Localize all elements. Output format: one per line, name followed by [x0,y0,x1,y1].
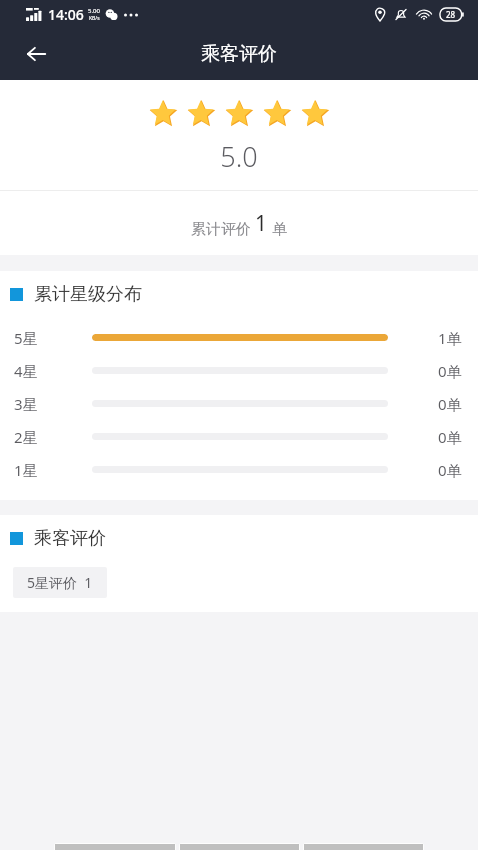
staticText: 乘客评价 [201,42,277,66]
button[interactable]: 1星 [0,453,478,486]
staticText: 乘客评价 [34,527,106,550]
staticText: 1 [255,209,268,238]
staticText: 0单 [438,361,462,381]
button[interactable]: 3星 [0,387,478,420]
staticText: 28 [446,9,456,20]
button[interactable]: Back [14,32,58,76]
staticText: 5.0 [0,138,478,175]
staticText: 3星 [14,394,60,414]
staticText: 5.00 [88,7,100,15]
button[interactable]: 4星 [0,354,478,387]
staticText: 1单 [438,328,462,348]
staticText: KB/s [89,15,100,22]
button[interactable]: 2星 [0,420,478,453]
staticText: 5星评价 1 [27,573,93,592]
button[interactable]: 5星评价 1 [13,567,107,598]
staticText: 14:06 [48,5,84,24]
staticText: 0单 [438,460,462,480]
staticText: 2星 [14,427,60,447]
staticText: 4星 [14,361,60,381]
staticText: 0单 [438,394,462,414]
button[interactable]: 5星 [0,321,478,354]
staticText: 累计评价 [191,218,255,238]
staticText: 0单 [438,427,462,447]
staticText: 5星 [14,328,60,348]
staticText: 单 [268,218,287,238]
staticText: 1星 [14,460,60,480]
staticText: 累计星级分布 [34,283,142,306]
